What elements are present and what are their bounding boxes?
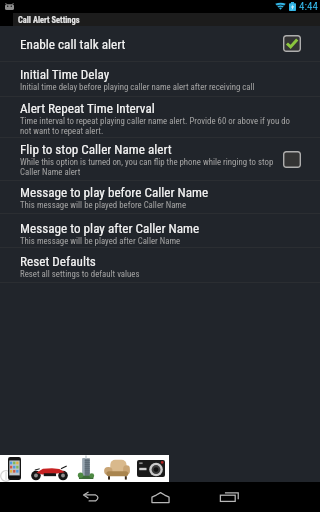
staticText: Initial Time Delay bbox=[20, 67, 110, 82]
staticText: Message to play after Caller Name bbox=[20, 221, 200, 236]
button[interactable]: Disabled checkbox bbox=[283, 151, 301, 168]
staticText: Reset all settings to default values bbox=[20, 269, 140, 279]
button[interactable]: Reset Defaults bbox=[0, 248, 320, 282]
button[interactable]: Enabled checkbox bbox=[283, 35, 301, 52]
staticText: This message will be played after Caller… bbox=[20, 236, 181, 246]
staticText: Message to play before Caller Name bbox=[20, 185, 209, 200]
button[interactable]: Initial Time Delay bbox=[0, 62, 320, 96]
button[interactable]: Call Alert Settings bbox=[13, 13, 320, 26]
staticText: Alert Repeat Time Interval bbox=[20, 101, 155, 116]
button[interactable]: Home bbox=[138, 482, 182, 512]
staticText: Initial time delay before playing caller… bbox=[20, 82, 255, 92]
staticText: This message will be played before Calle… bbox=[20, 200, 187, 210]
button[interactable]: Message to play before Caller Name bbox=[0, 181, 320, 213]
button[interactable]: Enable call talk alert bbox=[0, 26, 320, 61]
button[interactable]: Message to play after Caller Name bbox=[0, 214, 320, 247]
staticText: Enable call talk alert bbox=[20, 37, 126, 52]
staticText: Time interval to repeat playing caller n… bbox=[20, 116, 301, 136]
button[interactable]: Back bbox=[69, 482, 113, 512]
button[interactable]: Flip to stop Caller Name alert bbox=[0, 138, 320, 180]
staticText: Reset Defaults bbox=[20, 254, 96, 269]
staticText: Call Alert Settings bbox=[18, 15, 80, 25]
button[interactable]: Advertisement banner bbox=[0, 455, 169, 482]
staticText: Flip to stop Caller Name alert bbox=[20, 142, 172, 157]
staticText: 4:44 bbox=[299, 0, 318, 13]
button[interactable]: Recent apps bbox=[207, 482, 251, 512]
staticText: While this option is turned on, you can … bbox=[20, 157, 283, 177]
button[interactable]: Alert Repeat Time Interval bbox=[0, 97, 320, 137]
